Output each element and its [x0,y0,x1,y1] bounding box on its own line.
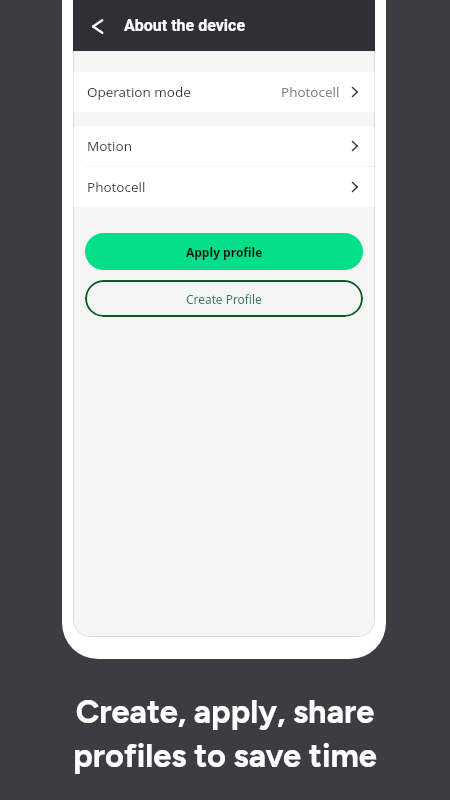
staticText: Motion [87,137,132,155]
button[interactable]: Motion [73,126,375,166]
staticText: Create, apply, share profiles to save ti… [73,692,377,775]
button[interactable]: Apply profile [85,233,363,270]
staticText: Create Profile [186,291,262,307]
button[interactable]: Create Profile [85,280,363,317]
staticText: Operation mode [87,83,191,101]
button[interactable]: Back [79,8,115,44]
staticText: Apply profile [186,244,263,260]
button[interactable]: Photocell [73,167,375,207]
staticText: Photocell [281,83,340,101]
button[interactable]: Operation mode [73,72,375,112]
staticText: About the device [124,16,246,35]
staticText: Photocell [87,178,146,196]
